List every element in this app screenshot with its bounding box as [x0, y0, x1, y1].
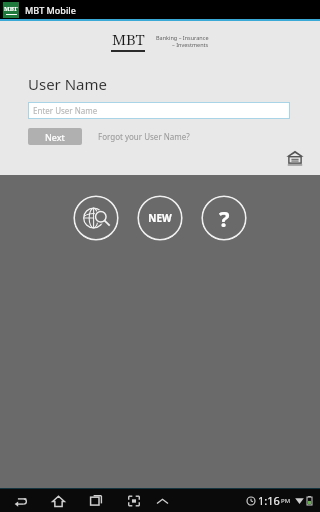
staticText: MBT	[112, 29, 145, 49]
staticText: PM	[281, 497, 291, 505]
other: Equal Housing Lender	[286, 150, 304, 166]
button[interactable]: Screenshot	[124, 491, 144, 511]
staticText: ?	[219, 203, 230, 233]
staticText: Forgot your User Name?	[98, 131, 190, 142]
staticText: Enter User Name	[33, 105, 98, 116]
staticText: – Investments	[172, 41, 209, 48]
staticText: Banking – Insurance	[156, 34, 209, 41]
button[interactable]: Back	[10, 491, 30, 511]
button[interactable]: Recent apps	[86, 491, 106, 511]
button[interactable]: Home	[48, 491, 68, 511]
button[interactable]: Show notifications	[154, 493, 170, 509]
button[interactable]: Help	[201, 195, 247, 241]
staticText: NEW	[148, 211, 172, 225]
button[interactable]: Next	[28, 128, 82, 145]
button[interactable]: Find a location	[73, 195, 119, 241]
staticText: 1:16	[258, 493, 280, 508]
button[interactable]: Enter User Name	[28, 102, 290, 119]
button[interactable]: Forgot your User Name?	[96, 129, 192, 144]
staticText: MBT	[4, 5, 18, 13]
button[interactable]: New user	[137, 195, 183, 241]
staticText: Next	[45, 131, 65, 143]
staticText: MBT Mobile	[25, 4, 76, 16]
staticText: User Name	[28, 74, 108, 94]
